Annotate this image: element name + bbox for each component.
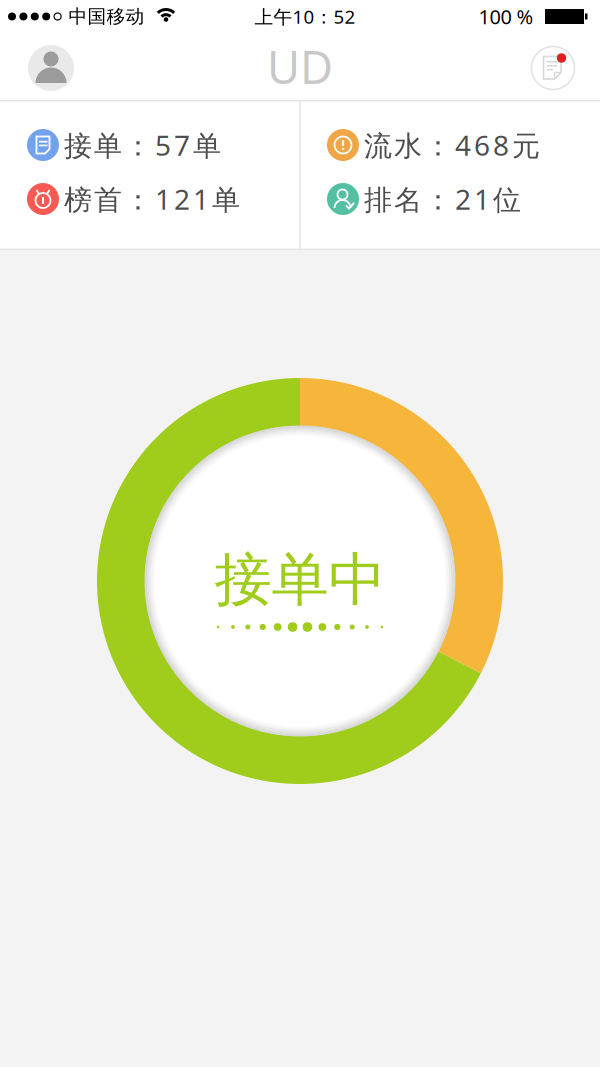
staticText: 上午10：52 [254,4,355,29]
staticText: 接单中 [214,545,385,615]
button[interactable]: 个人中心 [0,0,600,1067]
button[interactable]: 消息 [0,0,600,1067]
staticText: 中国移动 [68,5,144,28]
staticText: 100 % [478,3,533,30]
staticText: 榜 首 ： 1 2 1 单 [64,180,240,218]
button[interactable]: 接单中 [0,0,600,1067]
staticText: 流 水 ： 4 6 8 元 [364,126,540,164]
staticText: 排 名 ： 2 1 位 [364,180,521,218]
staticText: 接 单 ： 5 7 单 [64,126,221,164]
staticText: UD [267,36,333,97]
